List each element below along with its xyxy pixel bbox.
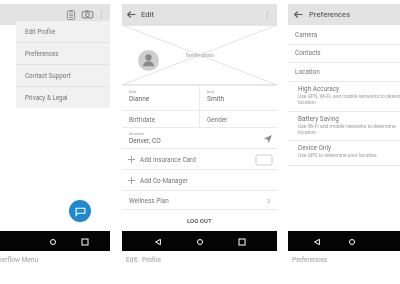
button[interactable]: Birthdate: [122, 111, 199, 128]
button[interactable]: Gender: [200, 111, 277, 128]
staticText: High Accuracy: [298, 85, 340, 93]
button[interactable]: More options: [262, 9, 273, 20]
staticText: Contact Support: [25, 72, 71, 79]
button[interactable]: Home: [345, 235, 358, 248]
button[interactable]: More options: [96, 9, 107, 20]
button[interactable]: Wellness Plan: [122, 191, 277, 210]
button[interactable]: Back: [310, 235, 323, 248]
staticText: Edit: Profile: [126, 256, 161, 264]
staticText: Battery Saving: [298, 115, 339, 123]
button[interactable]: Back: [292, 8, 305, 21]
staticText: Contacts: [295, 49, 321, 57]
button[interactable]: location: [122, 128, 277, 149]
staticText: Edit: [141, 10, 154, 19]
button[interactable]: Battery Saving: [288, 111, 400, 140]
button[interactable]: Back: [125, 8, 138, 21]
button[interactable]: LOG OUT: [122, 209, 277, 231]
staticText: first: [129, 89, 137, 94]
staticText: Smith: [207, 95, 225, 103]
button[interactable]: Add Co-Manager: [122, 170, 277, 191]
button[interactable]: Notes: [63, 7, 78, 22]
staticText: 3: [267, 198, 271, 204]
staticText: Preferences: [292, 256, 328, 264]
button[interactable]: Recents: [235, 235, 248, 248]
button[interactable]: Camera: [288, 25, 400, 44]
button[interactable]: Camera: [80, 7, 95, 22]
button[interactable]: Device Only: [288, 140, 400, 165]
staticText: Birthdate: [129, 116, 156, 124]
button[interactable]: Contact Support: [16, 65, 110, 86]
button[interactable]: Recents: [78, 235, 91, 248]
button[interactable]: Location: [288, 62, 400, 81]
button[interactable]: Edit Profile: [16, 21, 110, 42]
button[interactable]: Home: [46, 235, 59, 248]
button[interactable]: Contacts: [288, 44, 400, 62]
staticText: Privacy & Legal: [25, 94, 68, 101]
staticText: Wellness Plan: [129, 197, 169, 205]
staticText: LOG OUT: [187, 217, 212, 224]
staticText: Use GPS, Wi-Fi, and mobile networks to d…: [298, 93, 400, 105]
staticText: Preferences: [309, 10, 351, 19]
button[interactable]: Home: [193, 235, 206, 248]
button[interactable]: last: [200, 86, 277, 111]
button[interactable]: Profile photo: [138, 50, 159, 71]
staticText: Edit Profile: [25, 28, 56, 35]
staticText: Gender: [207, 116, 228, 124]
staticText: Camera: [295, 31, 318, 39]
staticText: Overflow Menu: [0, 256, 39, 264]
staticText: Add Insurance Card: [140, 156, 196, 164]
button[interactable]: Message: [69, 200, 91, 222]
button[interactable]: Privacy & Legal: [16, 87, 110, 108]
staticText: Use Wi-Fi and mobile networks to determi…: [298, 123, 400, 135]
staticText: family photo: [186, 52, 214, 58]
staticText: Use GPS to determine your location: [298, 152, 377, 158]
staticText: Add Co-Manager: [140, 177, 188, 185]
staticText: last: [207, 89, 215, 94]
staticText: Denver, CO: [129, 137, 161, 145]
button[interactable]: first: [122, 86, 199, 111]
button[interactable]: Add Insurance Card: [122, 149, 277, 170]
button[interactable]: Preferences: [16, 43, 110, 64]
staticText: Device Only: [298, 144, 332, 152]
staticText: location: [129, 131, 145, 136]
staticText: Location: [295, 68, 320, 76]
button[interactable]: High Accuracy: [288, 81, 400, 111]
staticText: Preferences: [25, 50, 59, 57]
staticText: Dianne: [129, 95, 150, 103]
button[interactable]: Back: [151, 235, 164, 248]
